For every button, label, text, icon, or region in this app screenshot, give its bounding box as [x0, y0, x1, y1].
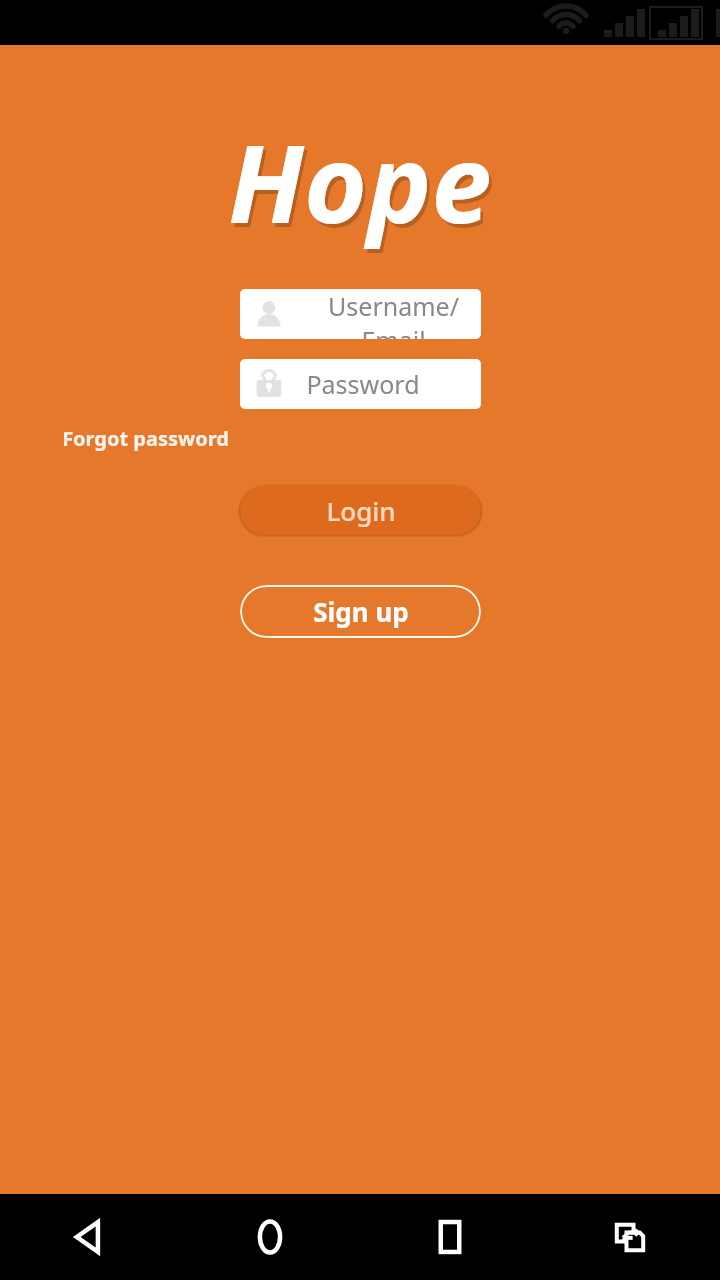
button[interactable]: Recent apps — [360, 1194, 540, 1280]
staticText: Forgot password — [62, 425, 229, 452]
button[interactable]: Home — [180, 1194, 360, 1280]
staticText: Sign up — [313, 594, 409, 629]
button[interactable]: Username/Email — [240, 289, 481, 339]
button[interactable]: Password — [240, 359, 481, 409]
staticText: Hope — [231, 112, 495, 259]
button[interactable]: Back — [0, 1194, 180, 1280]
staticText: Login — [326, 493, 396, 528]
staticText: Password — [306, 367, 420, 401]
staticText: Hope — [228, 108, 492, 255]
button[interactable]: Switch app — [540, 1194, 720, 1280]
button[interactable]: Forgot password — [60, 421, 231, 456]
staticText: Username/Email — [306, 289, 481, 339]
button[interactable]: Login — [240, 485, 481, 535]
button[interactable]: Sign up — [240, 585, 481, 638]
